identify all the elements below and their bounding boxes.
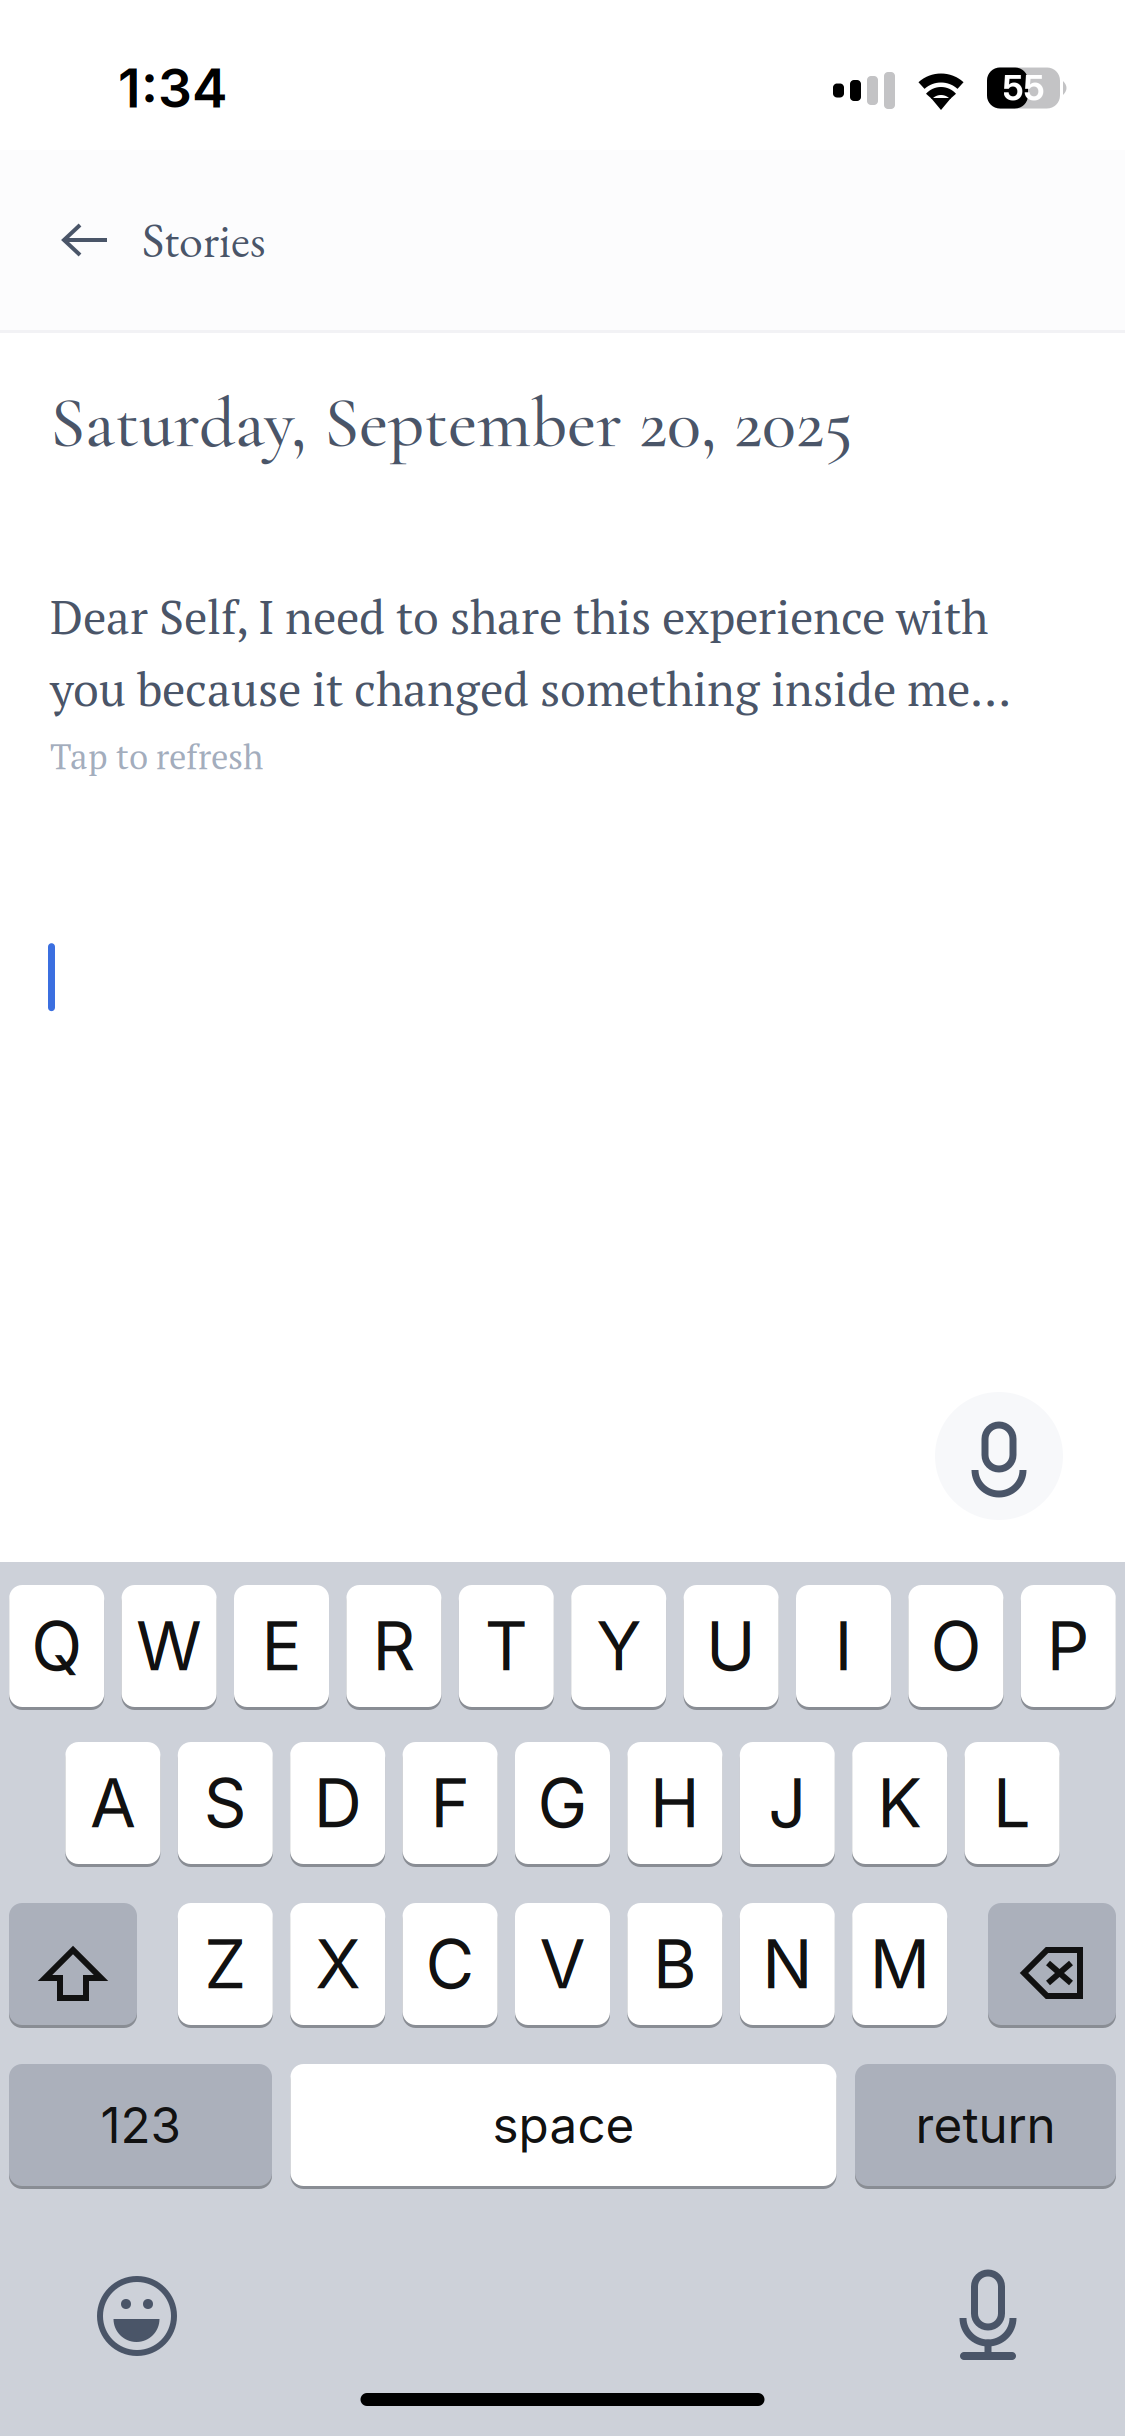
button[interactable]: C xyxy=(403,1900,498,2028)
staticText: Y xyxy=(596,1606,641,1686)
staticText: K xyxy=(877,1763,922,1843)
button[interactable]: return xyxy=(855,2061,1116,2189)
button[interactable]: J xyxy=(740,1739,835,1867)
button[interactable]: G xyxy=(515,1739,610,1867)
button[interactable]: F xyxy=(403,1739,498,1867)
button[interactable]: E xyxy=(234,1582,329,1710)
button[interactable]: 123 xyxy=(9,2061,272,2189)
staticText: Q xyxy=(31,1606,82,1686)
button[interactable]: Q xyxy=(9,1582,104,1710)
staticText: Stories xyxy=(142,209,266,271)
staticText: Saturday, September 20, 2025 xyxy=(50,380,853,466)
button[interactable]: X xyxy=(290,1900,385,2028)
button[interactable]: R xyxy=(346,1582,441,1710)
button[interactable]: Shift xyxy=(9,1900,137,2028)
button[interactable]: W xyxy=(122,1582,217,1710)
staticText: M xyxy=(870,1924,930,2004)
button[interactable]: T xyxy=(459,1582,554,1710)
staticText: J xyxy=(768,1763,806,1843)
staticText: A xyxy=(90,1763,136,1843)
button[interactable]: Z xyxy=(178,1900,273,2028)
staticText: L xyxy=(993,1763,1031,1843)
staticText: R xyxy=(372,1606,415,1686)
staticText: space xyxy=(492,2095,634,2155)
staticText: C xyxy=(426,1924,475,2004)
button[interactable]: M xyxy=(852,1900,947,2028)
button[interactable]: V xyxy=(515,1900,610,2028)
button[interactable]: Delete xyxy=(988,1900,1116,2028)
staticText: Dear Self, I need to share this experien… xyxy=(50,586,1011,719)
staticText: G xyxy=(537,1763,587,1843)
staticText: 123 xyxy=(100,2095,180,2155)
button[interactable]: L xyxy=(965,1739,1060,1867)
staticText: E xyxy=(261,1606,301,1686)
staticText: W xyxy=(136,1606,202,1686)
button[interactable]: Dear Self, I need to share this experien… xyxy=(0,586,1125,779)
button[interactable]: N xyxy=(740,1900,835,2028)
staticText: N xyxy=(762,1924,812,2004)
staticText: F xyxy=(431,1763,470,1843)
staticText: S xyxy=(204,1763,247,1843)
button[interactable]: space xyxy=(290,2061,836,2189)
staticText: return xyxy=(915,2095,1055,2155)
staticText: V xyxy=(539,1924,585,2004)
staticText: Z xyxy=(204,1924,246,2004)
button[interactable]: Stories xyxy=(0,150,300,330)
button[interactable]: Emoji xyxy=(97,2276,177,2356)
button[interactable]: K xyxy=(852,1739,947,1867)
button[interactable]: Dictation xyxy=(960,2273,1016,2359)
button[interactable]: P xyxy=(1021,1582,1116,1710)
staticText: 1:34 xyxy=(118,56,228,120)
button[interactable]: Y xyxy=(571,1582,666,1710)
staticText: B xyxy=(653,1924,697,2004)
staticText: 55 xyxy=(1002,67,1044,109)
staticText: I xyxy=(834,1606,852,1686)
button[interactable]: Dictate xyxy=(935,1392,1063,1520)
staticText: D xyxy=(314,1763,362,1843)
button[interactable]: S xyxy=(178,1739,273,1867)
button[interactable]: I xyxy=(796,1582,891,1710)
button[interactable]: U xyxy=(684,1582,779,1710)
staticText: P xyxy=(1047,1606,1090,1686)
staticText: O xyxy=(930,1606,981,1686)
staticText: T xyxy=(485,1606,528,1686)
staticText: X xyxy=(315,1924,360,2004)
button[interactable]: D xyxy=(290,1739,385,1867)
button[interactable]: H xyxy=(627,1739,722,1867)
staticText: Tap to refresh xyxy=(50,733,263,779)
button[interactable]: B xyxy=(627,1900,722,2028)
staticText: U xyxy=(706,1606,756,1686)
staticText: H xyxy=(650,1763,700,1843)
button[interactable]: O xyxy=(908,1582,1003,1710)
button[interactable]: A xyxy=(65,1739,160,1867)
